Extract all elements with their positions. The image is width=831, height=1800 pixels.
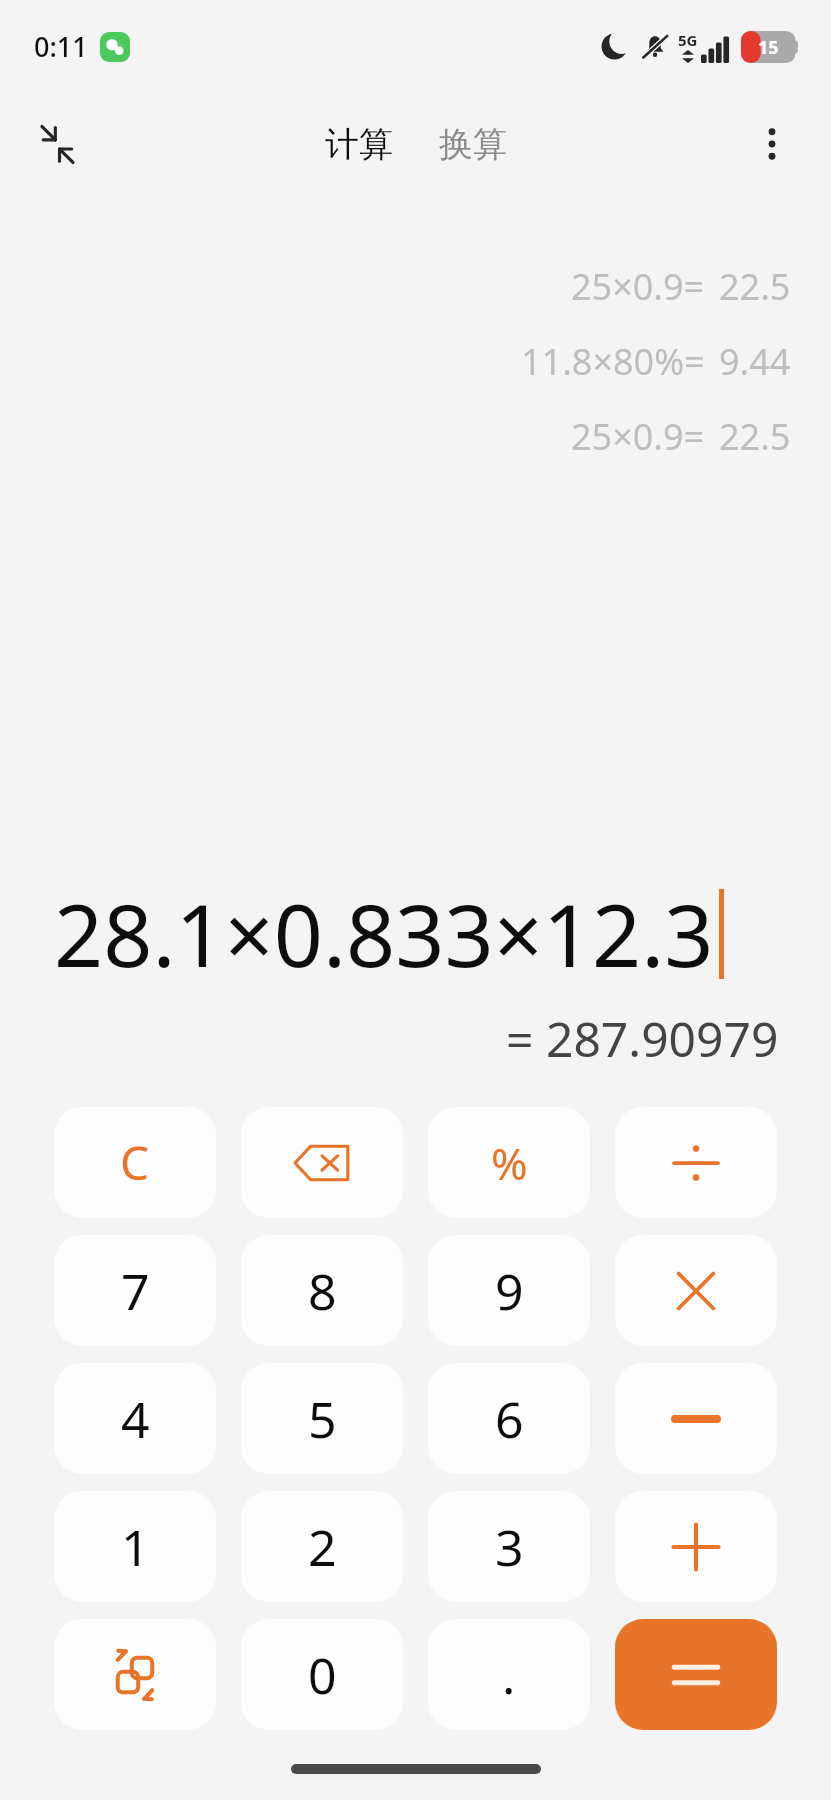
staticText: 0:11 [34, 28, 88, 65]
button[interactable]: 8 [241, 1235, 403, 1346]
button[interactable]: 换算 [429, 115, 517, 174]
button[interactable]: Equals [615, 1619, 777, 1730]
staticText: 22.5 [719, 262, 791, 311]
button[interactable]: 11.8×80%= [521, 335, 791, 388]
staticText: 28.1×0.833×12.3 [54, 875, 714, 992]
button[interactable]: . [428, 1619, 590, 1730]
button[interactable]: 计算 [315, 115, 403, 174]
button[interactable]: 25×0.9= [571, 260, 791, 313]
button[interactable]: 4 [54, 1363, 216, 1474]
staticText: 4 [121, 1385, 150, 1453]
staticText: = 287.90979 [506, 1006, 779, 1071]
staticText: % [491, 1133, 528, 1193]
button[interactable]: 7 [54, 1235, 216, 1346]
button[interactable]: 9 [428, 1235, 590, 1346]
button[interactable]: Unit conversion [54, 1619, 216, 1730]
staticText: 1 [121, 1513, 150, 1581]
staticText: 15 [758, 35, 779, 60]
staticText: 6 [495, 1385, 524, 1453]
staticText: 9.44 [719, 337, 791, 386]
button[interactable]: C [54, 1107, 216, 1218]
staticText: 22.5 [719, 412, 791, 461]
staticText: C [120, 1131, 150, 1194]
staticText: 11.8×80%= [521, 337, 705, 386]
button[interactable]: 1 [54, 1491, 216, 1602]
button[interactable]: % [428, 1107, 590, 1218]
staticText: 5G [678, 30, 698, 50]
button[interactable]: More options [737, 109, 807, 179]
button[interactable]: Plus [615, 1491, 777, 1602]
staticText: 25×0.9= [571, 412, 705, 461]
staticText: 0 [308, 1641, 337, 1709]
staticText: 9 [495, 1257, 524, 1325]
button[interactable]: 3 [428, 1491, 590, 1602]
staticText: 计算 [325, 123, 393, 166]
button[interactable]: Divide [615, 1107, 777, 1218]
button[interactable]: Collapse [22, 109, 92, 179]
button[interactable]: 6 [428, 1363, 590, 1474]
staticText: 7 [121, 1257, 150, 1325]
staticText: 2 [308, 1513, 337, 1581]
button[interactable]: Multiply [615, 1235, 777, 1346]
button[interactable]: 0 [241, 1619, 403, 1730]
button[interactable]: Backspace [241, 1107, 403, 1218]
button[interactable]: 25×0.9= [571, 410, 791, 463]
staticText: 8 [308, 1257, 337, 1325]
staticText: 25×0.9= [571, 262, 705, 311]
staticText: 5 [308, 1385, 337, 1453]
staticText: 换算 [439, 123, 507, 166]
button[interactable]: 2 [241, 1491, 403, 1602]
button[interactable]: 5 [241, 1363, 403, 1474]
staticText: 3 [495, 1513, 524, 1581]
staticText: . [502, 1641, 516, 1709]
button[interactable]: Minus [615, 1363, 777, 1474]
